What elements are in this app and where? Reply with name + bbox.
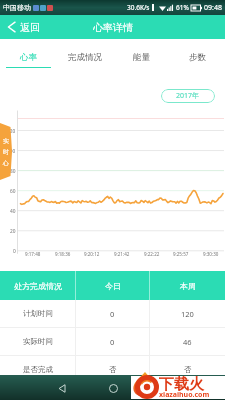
staticText: 2017年 — [176, 91, 200, 101]
staticText: 09:48 — [204, 3, 222, 13]
button[interactable]: 处方完成情况 — [0, 271, 75, 300]
staticText: 否 — [184, 365, 192, 374]
staticText: 9:18:36 — [55, 251, 71, 257]
button[interactable]: 是否完成 — [0, 356, 225, 383]
staticText: 0 — [110, 309, 115, 319]
staticText: 心率 — [20, 52, 37, 63]
staticText: 中国移动 — [3, 3, 31, 12]
button[interactable]: Back — [53, 379, 71, 397]
button[interactable]: 2017年 — [161, 89, 215, 103]
staticText: 实 — [3, 137, 9, 145]
staticText: 46 — [183, 337, 192, 347]
staticText: 80 — [10, 168, 16, 175]
button[interactable]: 心率 — [0, 39, 57, 71]
staticText: 返回 — [20, 21, 40, 34]
staticText: xiazaihuo.com — [159, 390, 210, 400]
button[interactable]: 今日 — [76, 271, 149, 300]
staticText: 120 — [181, 309, 194, 319]
button[interactable]: 计划时间 — [0, 300, 225, 327]
staticText: 心率详情 — [93, 21, 133, 34]
button[interactable]: 实时心率 — [0, 123, 12, 180]
staticText: 步数 — [189, 52, 206, 63]
staticText: 30.6K/s — [127, 3, 150, 12]
staticText: 20 — [10, 228, 16, 235]
staticText: 处方完成情况 — [14, 281, 62, 291]
button[interactable]: 完成情况 — [57, 39, 113, 71]
staticText: 9:20:12 — [84, 251, 100, 257]
staticText: 40 — [10, 208, 16, 215]
staticText: 计划时间 — [23, 309, 53, 318]
staticText: 120 — [7, 128, 16, 135]
button[interactable]: 实际时间 — [0, 328, 225, 355]
staticText: 60 — [10, 188, 16, 195]
staticText: 能量 — [133, 52, 150, 63]
staticText: 100 — [7, 148, 16, 155]
staticText: 9:17:48 — [25, 251, 41, 257]
staticText: 9:22:22 — [144, 251, 160, 257]
staticText: 心 — [3, 159, 9, 167]
staticText: 完成情况 — [68, 52, 102, 63]
staticText: 9:21:42 — [114, 251, 130, 257]
staticText: 下载火 — [159, 375, 204, 394]
button[interactable]: 返回 — [6, 15, 40, 39]
staticText: 今日 — [105, 281, 121, 291]
staticText: 9:25:57 — [173, 251, 189, 257]
staticText: 本周 — [180, 281, 196, 291]
staticText: 0 — [110, 337, 115, 347]
button[interactable]: 能量 — [113, 39, 169, 71]
staticText: 否 — [109, 365, 117, 374]
button[interactable]: 本周 — [150, 271, 225, 300]
staticText: 实际时间 — [23, 337, 53, 346]
button[interactable]: Home — [104, 379, 122, 397]
button[interactable]: Recent apps — [154, 379, 172, 397]
staticText: 时 — [3, 148, 9, 156]
staticText: 是否完成 — [23, 365, 53, 374]
staticText: 9:30:30 — [203, 251, 219, 257]
staticText: 0 — [13, 248, 16, 255]
button[interactable]: 步数 — [169, 39, 225, 71]
staticText: 61% — [176, 3, 189, 12]
